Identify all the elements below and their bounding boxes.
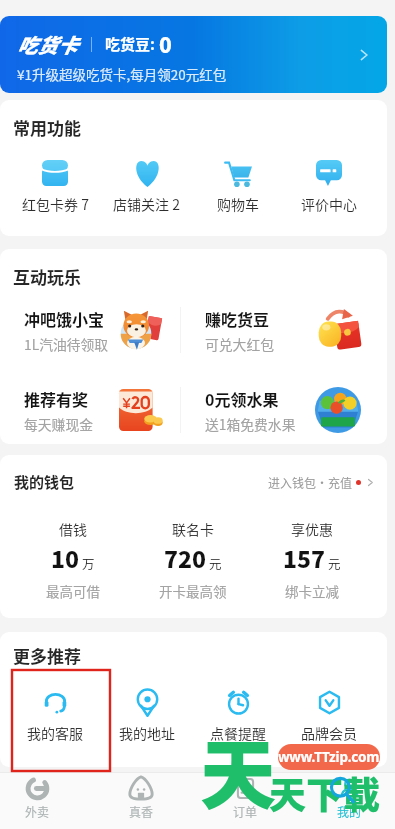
button[interactable]: 享优惠 bbox=[252, 519, 371, 601]
staticText: 借钱 bbox=[59, 519, 87, 539]
button[interactable]: 店铺关注 2 bbox=[101, 159, 192, 214]
staticText: 天 bbox=[200, 715, 276, 825]
staticText: 赚吃货豆 bbox=[205, 307, 270, 330]
staticText: 157 bbox=[283, 541, 326, 574]
staticText: 元 bbox=[209, 554, 222, 572]
button[interactable]: 红包卡券 7 bbox=[9, 159, 101, 214]
staticText: 享优惠 bbox=[291, 519, 333, 539]
staticText: 开卡最高领 bbox=[159, 581, 227, 601]
staticText: 万 bbox=[82, 554, 95, 572]
button[interactable]: 我的地址 bbox=[101, 688, 192, 743]
staticText: 0元领水果 bbox=[205, 387, 279, 410]
staticText: 购物车 bbox=[217, 194, 259, 214]
staticText: 我的钱包 bbox=[14, 471, 75, 493]
button[interactable]: 真香 bbox=[89, 773, 193, 829]
staticText: 联名卡 bbox=[172, 519, 214, 539]
staticText: 真香 bbox=[129, 803, 154, 820]
staticText: ¥1升级超级吃货卡,每月领20元红包 bbox=[17, 64, 227, 84]
button[interactable]: 我的 bbox=[297, 773, 395, 829]
staticText: 常用功能 bbox=[13, 115, 81, 140]
button[interactable]: 推荐有奖 bbox=[24, 377, 163, 443]
button[interactable]: 订单 bbox=[193, 773, 297, 829]
staticText: 更多推荐 bbox=[13, 643, 81, 668]
staticText: 绑卡立减 bbox=[285, 581, 339, 601]
staticText: 最高可借 bbox=[46, 581, 100, 601]
button[interactable]: 联名卡 bbox=[133, 519, 252, 601]
staticText: www.TTzip.com bbox=[278, 748, 380, 766]
button[interactable]: 借钱 bbox=[13, 519, 133, 601]
staticText: 冲吧饿小宝 bbox=[24, 307, 105, 330]
button[interactable]: 进入钱包·充值 bbox=[268, 474, 376, 491]
staticText: 吃货卡 bbox=[17, 30, 78, 59]
staticText: 订单 bbox=[233, 803, 258, 820]
staticText: 外卖 bbox=[25, 803, 50, 820]
staticText: 评价中心 bbox=[301, 194, 357, 214]
staticText: 店铺关注 2 bbox=[113, 194, 180, 214]
button[interactable]: 品牌会员 bbox=[283, 688, 374, 743]
staticText: 每天赚现金 bbox=[24, 414, 93, 434]
staticText: 我的 bbox=[337, 803, 362, 820]
button[interactable]: 更多 bbox=[353, 44, 375, 66]
button[interactable]: 点餐提醒 bbox=[192, 688, 283, 743]
staticText: 10 bbox=[51, 541, 80, 574]
button[interactable]: 0元领水果 bbox=[205, 377, 361, 443]
staticText: 点餐提醒 bbox=[210, 723, 266, 743]
button[interactable]: 我的客服 bbox=[9, 688, 101, 743]
staticText: 我的地址 bbox=[119, 723, 175, 743]
staticText: 可兑大红包 bbox=[205, 334, 274, 354]
staticText: 天下載 bbox=[269, 766, 380, 820]
staticText: 吃货豆: bbox=[105, 33, 155, 55]
staticText: 我的客服 bbox=[27, 723, 83, 743]
button[interactable]: 外卖 bbox=[0, 773, 89, 829]
staticText: 红包卡券 7 bbox=[22, 194, 89, 214]
staticText: 品牌会员 bbox=[301, 723, 357, 743]
button[interactable]: 评价中心 bbox=[283, 159, 374, 214]
staticText: 1L汽油待领取 bbox=[24, 334, 109, 354]
staticText: 元 bbox=[328, 554, 341, 572]
staticText: 推荐有奖 bbox=[24, 387, 89, 410]
staticText: 进入钱包·充值 bbox=[268, 474, 353, 491]
staticText: 720 bbox=[164, 541, 207, 574]
staticText: 0 bbox=[159, 29, 172, 59]
button[interactable]: 购物车 bbox=[192, 159, 283, 214]
button[interactable]: 赚吃货豆 bbox=[205, 297, 361, 363]
staticText: 互动玩乐 bbox=[13, 264, 81, 289]
staticText: 送1箱免费水果 bbox=[205, 414, 296, 434]
button[interactable]: 吃货卡 bbox=[0, 16, 387, 93]
button[interactable]: 冲吧饿小宝 bbox=[24, 297, 163, 363]
